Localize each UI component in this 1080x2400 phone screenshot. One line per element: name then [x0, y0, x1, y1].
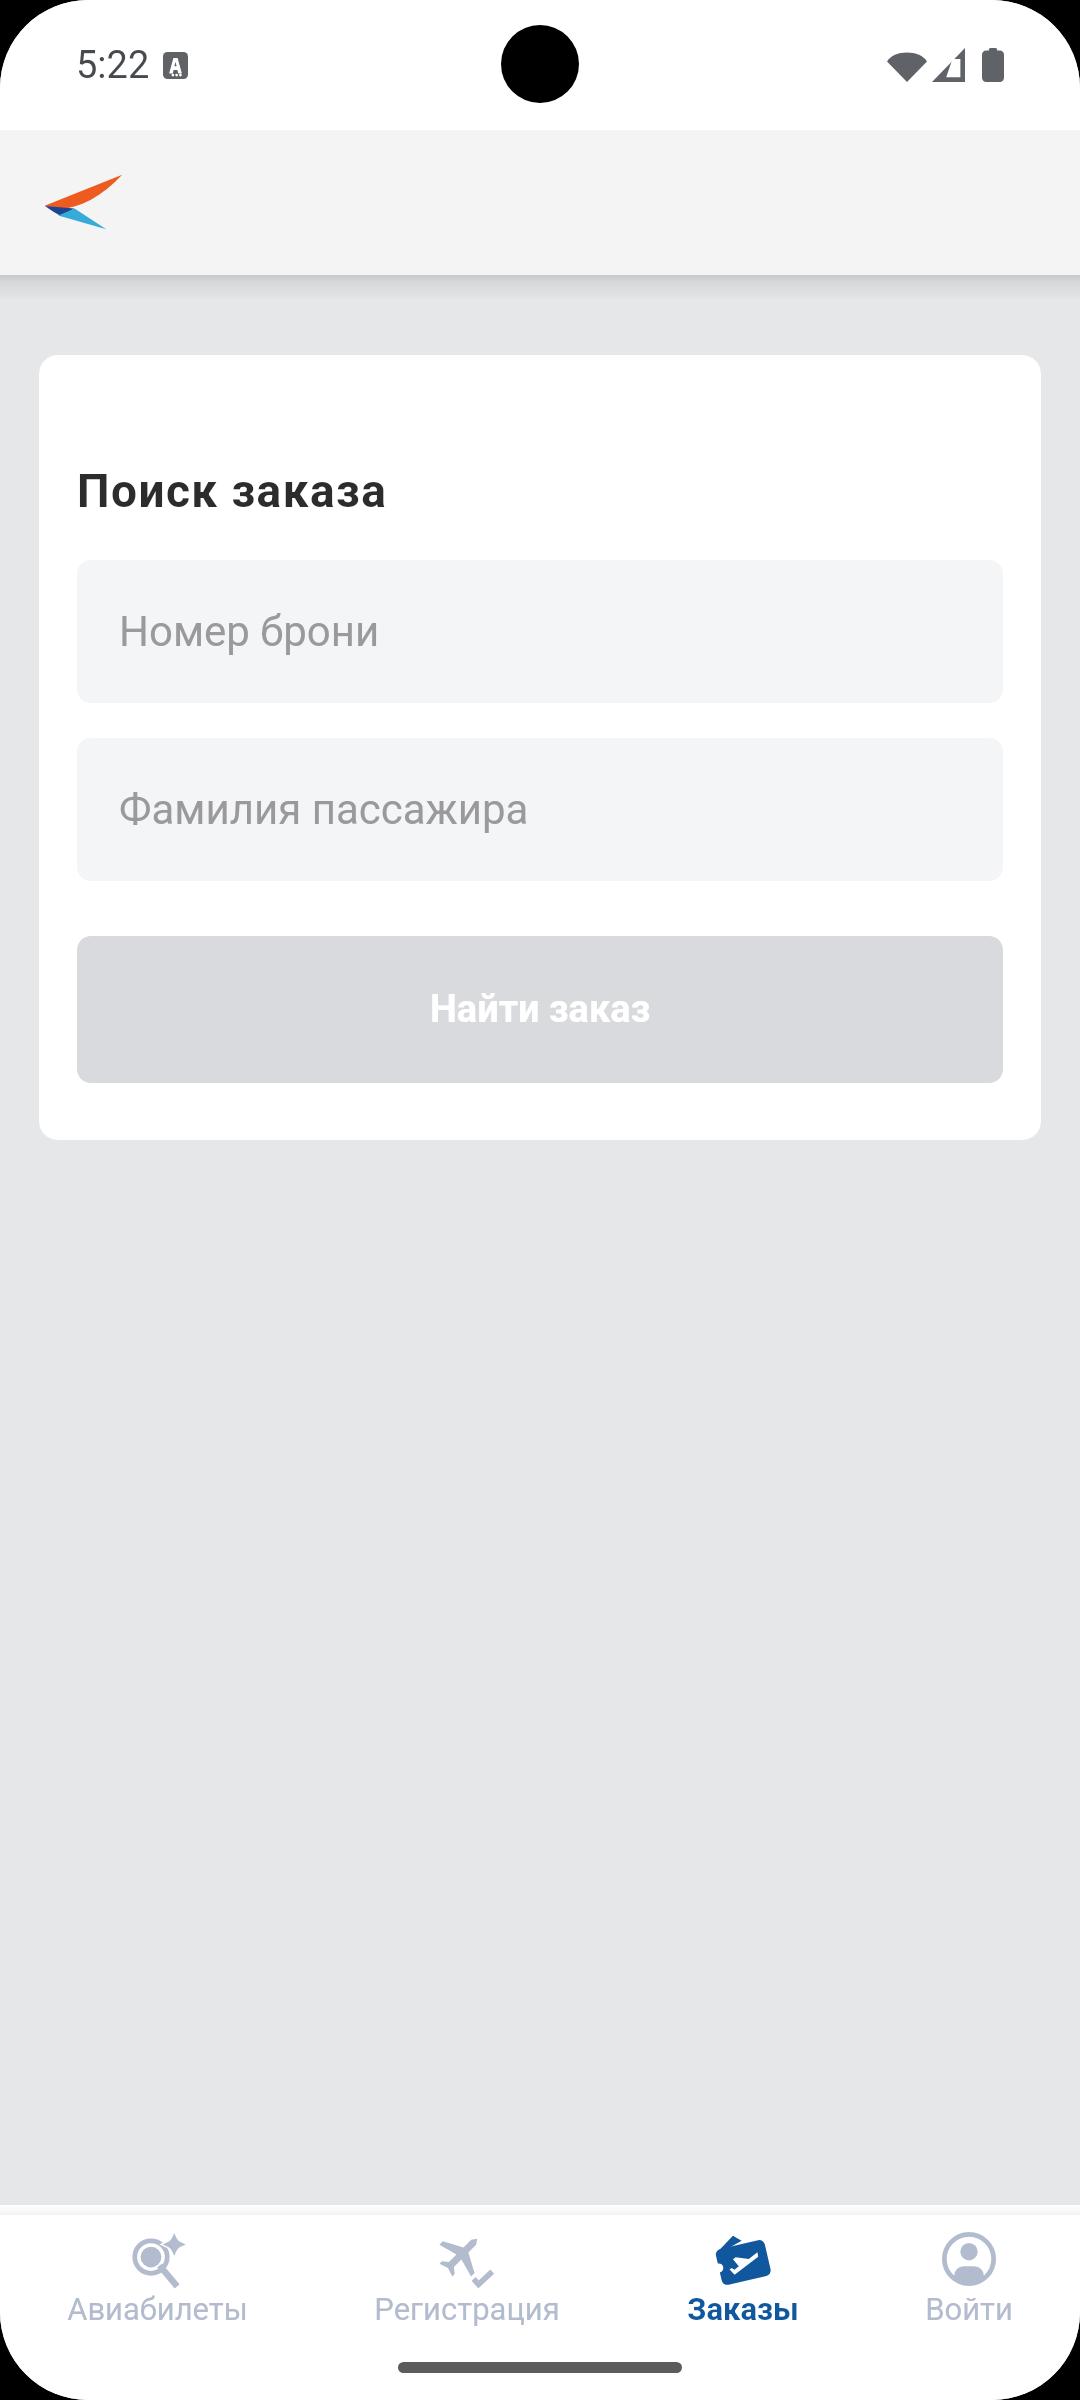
staticText: Фамилия пассажира	[119, 785, 529, 834]
staticText: Войти	[925, 2291, 1013, 2327]
button[interactable]: Ural Airlines home	[0, 130, 162, 275]
staticText: Номер брони	[119, 607, 380, 656]
staticText: Найти заказ	[430, 987, 651, 1032]
staticText: Заказы	[687, 2291, 799, 2327]
button[interactable]: Найти заказ	[77, 936, 1003, 1083]
staticText: 5:22	[76, 43, 150, 88]
button[interactable]: Заказы	[677, 2215, 809, 2337]
staticText: Авиабилеты	[67, 2291, 248, 2327]
button[interactable]: Фамилия пассажира	[77, 738, 1003, 881]
staticText: Регистрация	[374, 2291, 560, 2327]
other: Screenshot indicator	[163, 52, 188, 79]
staticText: Поиск заказа	[77, 464, 388, 518]
button[interactable]: Авиабилеты	[57, 2215, 258, 2337]
button[interactable]: Регистрация	[364, 2215, 570, 2337]
button[interactable]: Номер брони	[77, 560, 1003, 703]
button[interactable]: Войти	[915, 2215, 1023, 2337]
